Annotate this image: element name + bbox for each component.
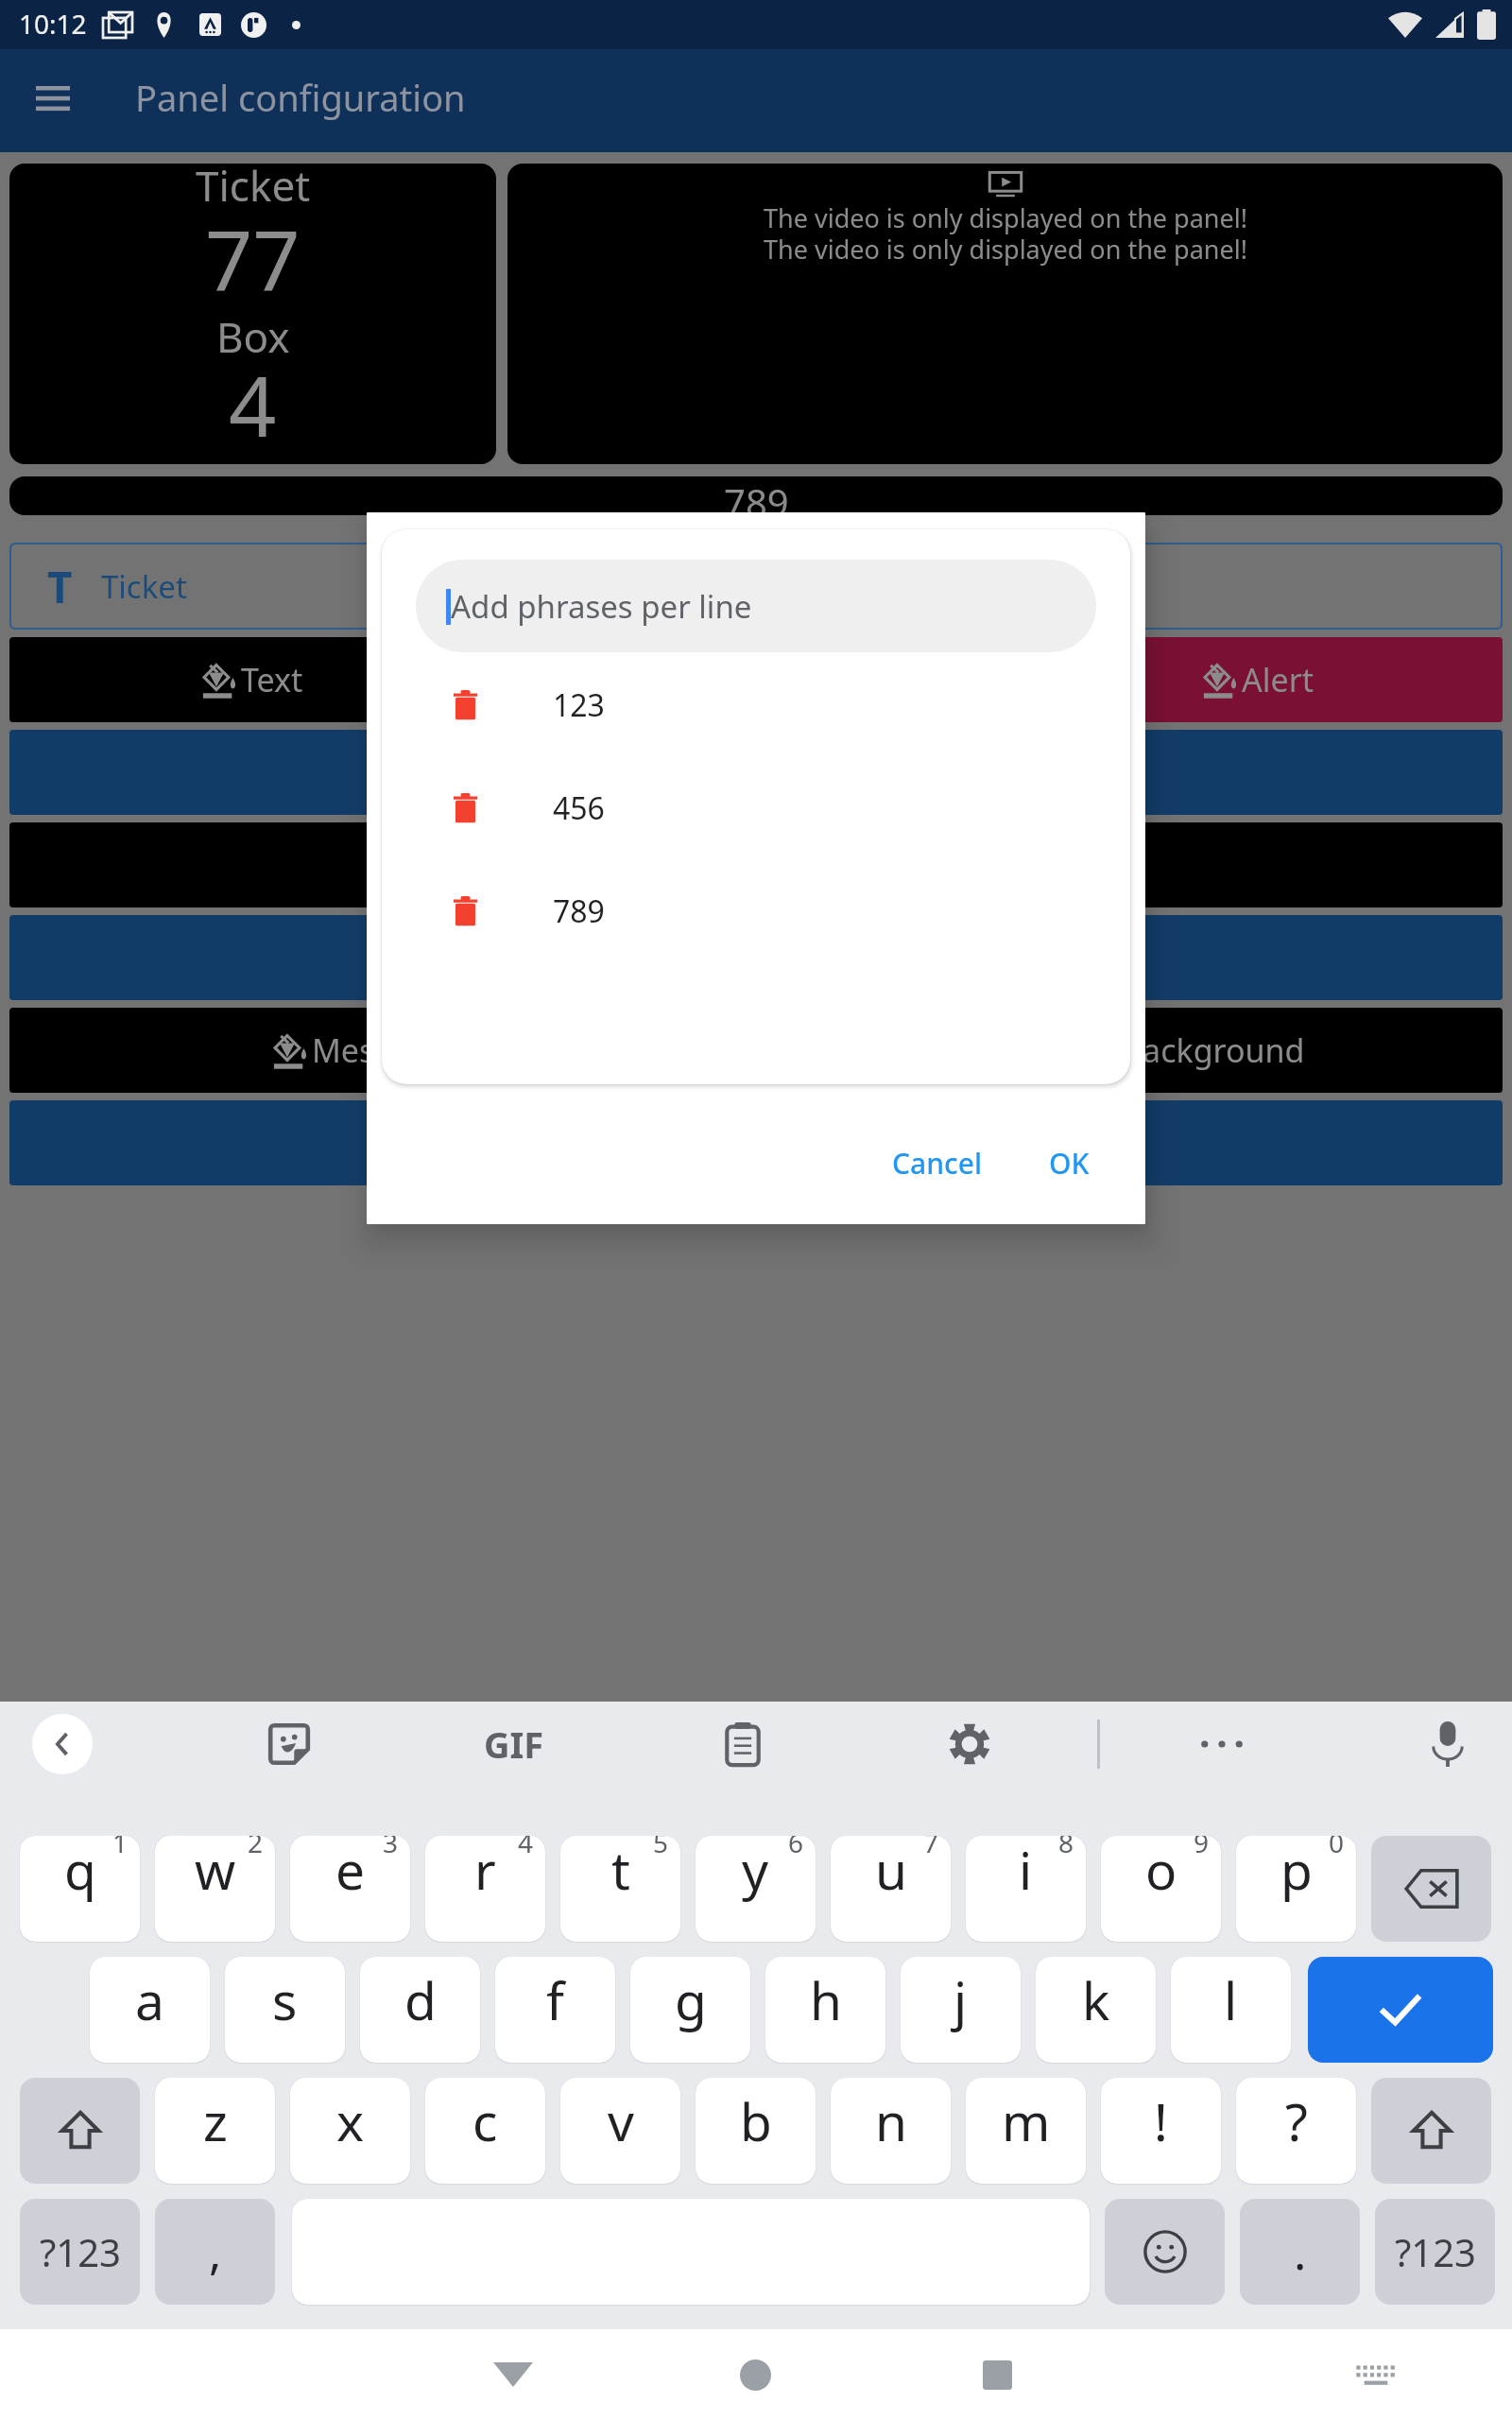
button[interactable] bbox=[760, 915, 1503, 1000]
button[interactable]: l bbox=[1171, 1957, 1291, 2063]
button[interactable]: a bbox=[90, 1957, 210, 2063]
button[interactable]: y bbox=[696, 1836, 816, 1942]
staticText: i bbox=[1019, 1836, 1033, 1905]
button[interactable] bbox=[760, 730, 1503, 815]
button[interactable]: Home bbox=[713, 2332, 798, 2417]
staticText: v bbox=[608, 2085, 634, 2156]
button[interactable]: u bbox=[831, 1836, 951, 1942]
staticText: c bbox=[472, 2085, 498, 2156]
button[interactable] bbox=[920, 1695, 1019, 1793]
button[interactable] bbox=[1173, 1695, 1271, 1793]
staticText: Ticket bbox=[101, 565, 187, 608]
button[interactable]: r bbox=[425, 1836, 545, 1942]
button[interactable]: p bbox=[1236, 1836, 1356, 1942]
button[interactable] bbox=[694, 1695, 792, 1793]
button[interactable]: g bbox=[630, 1957, 750, 2063]
button[interactable]: c bbox=[425, 2078, 545, 2184]
staticText: . bbox=[1294, 2220, 1307, 2284]
button[interactable]: s bbox=[225, 1957, 345, 2063]
staticText: 1 bbox=[112, 1836, 129, 1860]
button[interactable] bbox=[760, 1100, 1503, 1185]
button[interactable]: Backspace bbox=[1371, 1836, 1491, 1942]
staticText: 6 bbox=[788, 1836, 804, 1860]
button[interactable]: Enter bbox=[1308, 1957, 1493, 2063]
button[interactable]: Recent apps bbox=[954, 2332, 1039, 2417]
button[interactable]: Shift bbox=[20, 2078, 140, 2184]
button[interactable]: 789 bbox=[382, 859, 1130, 962]
button[interactable]: Open navigation menu bbox=[26, 72, 79, 125]
button[interactable] bbox=[240, 1695, 338, 1793]
button[interactable]: t bbox=[560, 1836, 680, 1942]
staticText: Add phrases per line bbox=[451, 585, 752, 628]
staticText: ?123 bbox=[1395, 2226, 1476, 2277]
button[interactable]: m bbox=[966, 2078, 1086, 2184]
button[interactable]: j bbox=[901, 1957, 1021, 2063]
button[interactable]: Symbols bbox=[1375, 2199, 1495, 2305]
staticText: Text bbox=[241, 658, 303, 701]
staticText: OK bbox=[1049, 1144, 1090, 1183]
button[interactable]: z bbox=[155, 2078, 275, 2184]
button[interactable]: 789 bbox=[9, 476, 1503, 515]
staticText: p bbox=[1280, 1836, 1313, 1905]
button[interactable]: Symbols bbox=[20, 2199, 140, 2305]
button[interactable]: Message bbox=[9, 1008, 751, 1093]
button[interactable]: , bbox=[155, 2199, 275, 2305]
staticText: b bbox=[740, 2085, 772, 2156]
staticText: j bbox=[954, 1964, 968, 2035]
staticText: ! bbox=[1154, 2085, 1168, 2156]
button[interactable]: Alert bbox=[760, 637, 1503, 722]
button[interactable]: Shift bbox=[1371, 2078, 1491, 2184]
button[interactable]: 123 bbox=[382, 653, 1130, 756]
button[interactable]: The video is only displayed on the panel… bbox=[507, 164, 1503, 464]
button[interactable]: Emoji bbox=[1105, 2199, 1225, 2305]
staticText: ? bbox=[1285, 2085, 1308, 2156]
staticText: o bbox=[1145, 1836, 1177, 1905]
button[interactable]: Text bbox=[9, 637, 751, 722]
button[interactable]: n bbox=[831, 2078, 951, 2184]
button[interactable]: k bbox=[1036, 1957, 1156, 2063]
button[interactable]: b bbox=[696, 2078, 816, 2184]
button[interactable]: Ticket bbox=[9, 164, 496, 464]
staticText: g bbox=[675, 1964, 707, 2035]
button[interactable]: ! bbox=[1101, 2078, 1221, 2184]
staticText: 789 bbox=[553, 890, 605, 932]
button[interactable] bbox=[9, 915, 751, 1000]
button[interactable]: Background bbox=[760, 1008, 1503, 1093]
button[interactable]: Add phrases per line bbox=[416, 560, 1096, 652]
staticText: 7 bbox=[923, 1836, 939, 1860]
staticText: 3 bbox=[383, 1836, 399, 1860]
staticText: t bbox=[611, 1836, 630, 1905]
staticText: The video is only displayed on the panel… bbox=[764, 200, 1247, 267]
staticText: Background bbox=[1122, 1028, 1305, 1072]
button[interactable]: x bbox=[290, 2078, 410, 2184]
staticText: 9 bbox=[1194, 1836, 1210, 1860]
button[interactable]: 456 bbox=[382, 756, 1130, 859]
button[interactable]: Back bbox=[32, 1714, 93, 1774]
button[interactable]: T bbox=[9, 543, 1503, 630]
button[interactable]: Back bbox=[471, 2332, 556, 2417]
button[interactable] bbox=[9, 1100, 751, 1185]
staticText: h bbox=[810, 1964, 842, 2035]
button[interactable]: v bbox=[560, 2078, 680, 2184]
button[interactable] bbox=[9, 822, 751, 907]
button[interactable]: o bbox=[1101, 1836, 1221, 1942]
button[interactable]: q bbox=[20, 1836, 140, 1942]
staticText: Panel configuration bbox=[135, 73, 466, 122]
staticText: 8 bbox=[1058, 1836, 1074, 1860]
button[interactable]: d bbox=[360, 1957, 480, 2063]
button[interactable] bbox=[1399, 1695, 1497, 1793]
button[interactable]: OK bbox=[1028, 1131, 1110, 1196]
button[interactable]: Switch keyboard bbox=[1333, 2332, 1418, 2417]
button[interactable]: f bbox=[495, 1957, 615, 2063]
button[interactable]: ? bbox=[1236, 2078, 1356, 2184]
button[interactable]: w bbox=[155, 1836, 275, 1942]
button[interactable]: Cancel bbox=[871, 1131, 1004, 1196]
button[interactable]: h bbox=[765, 1957, 885, 2063]
button[interactable] bbox=[760, 822, 1503, 907]
button[interactable]: . bbox=[1240, 2199, 1360, 2305]
button[interactable]: e bbox=[290, 1836, 410, 1942]
button[interactable]: GIF bbox=[465, 1695, 563, 1793]
button[interactable] bbox=[9, 730, 751, 815]
button[interactable]: i bbox=[966, 1836, 1086, 1942]
